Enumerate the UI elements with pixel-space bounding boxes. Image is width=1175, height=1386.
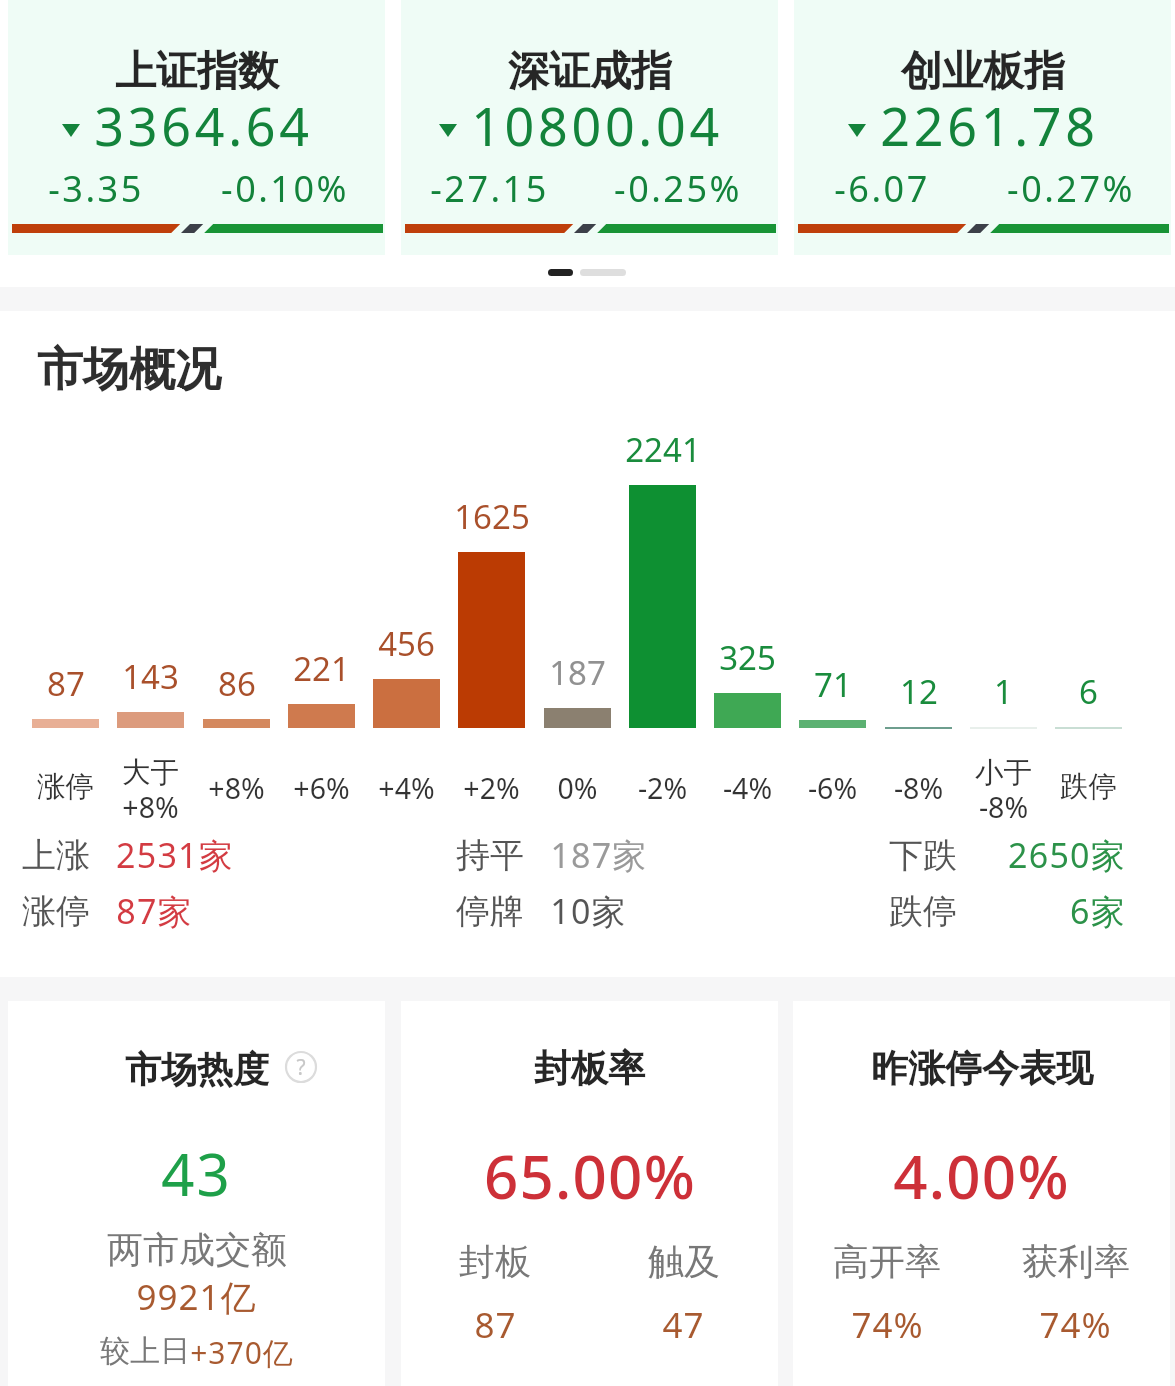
staticText: 小于 -8% [950, 755, 1057, 826]
staticText: +6% [268, 769, 375, 808]
staticText: ? [296, 1053, 306, 1082]
staticText: +370亿 [190, 1332, 294, 1373]
staticText: 停牌 [456, 890, 524, 933]
staticText: -0.27% [1007, 164, 1135, 213]
staticText: 9921亿 [136, 1273, 257, 1321]
staticText: 跌停 [889, 890, 957, 933]
staticText: 86 [218, 661, 256, 706]
button[interactable]: Help: about market heat [285, 1051, 317, 1083]
staticText: 涨停 [22, 890, 90, 933]
staticText: -3.35 [48, 164, 144, 213]
staticText: 65.00% [484, 1135, 696, 1217]
staticText: 87 [474, 1301, 517, 1349]
staticText: 1625 [454, 494, 530, 539]
staticText: 71 [814, 662, 852, 707]
staticText: -27.15 [430, 164, 549, 213]
staticText: 2261.78 [880, 90, 1099, 161]
staticText: 4.00% [893, 1135, 1070, 1217]
staticText: 0% [524, 769, 631, 808]
staticText: 43 [161, 1134, 232, 1213]
staticText: 47 [662, 1301, 705, 1349]
staticText: 获利率 [1022, 1239, 1130, 1284]
button[interactable]: 封板率 [401, 1001, 778, 1386]
staticText: 上涨 [22, 834, 90, 877]
staticText: 143 [122, 654, 179, 699]
staticText: +8% [183, 769, 290, 808]
button[interactable]: 创业板指 [794, 0, 1171, 255]
button[interactable]: Page indicator [548, 262, 626, 283]
staticText: 持平 [456, 834, 524, 877]
staticText: 2531家 [116, 832, 234, 878]
staticText: 2650家 [1008, 832, 1126, 878]
staticText: 456 [378, 621, 435, 666]
button[interactable]: 昨涨停今表现 [793, 1001, 1170, 1386]
staticText: 下跌 [889, 834, 957, 877]
staticText: 1 [994, 669, 1013, 714]
staticText: 封板 [459, 1239, 531, 1284]
staticText: 昨涨停今表现 [871, 1045, 1093, 1092]
staticText: -4% [694, 769, 801, 808]
staticText: +4% [353, 769, 460, 808]
staticText: -2% [609, 769, 716, 808]
staticText: 深证成指 [508, 46, 672, 98]
button[interactable]: 上证指数 [8, 0, 385, 255]
staticText: 触及 [648, 1239, 720, 1284]
button[interactable]: 市场热度 [8, 1001, 385, 1386]
staticText: 市场热度 [125, 1047, 269, 1092]
staticText: 6家 [1070, 888, 1126, 934]
staticText: 高开率 [833, 1239, 941, 1284]
button[interactable]: 深证成指 [401, 0, 778, 255]
staticText: 较上日 [100, 1332, 190, 1370]
staticText: 74% [1039, 1301, 1112, 1349]
staticText: 大于 +8% [97, 755, 204, 826]
staticText: -0.25% [614, 164, 742, 213]
staticText: +2% [438, 769, 545, 808]
staticText: 87家 [116, 888, 193, 934]
staticText: 187家 [550, 832, 648, 878]
staticText: 涨停 [12, 769, 119, 805]
staticText: 上证指数 [115, 46, 279, 98]
staticText: -6% [779, 769, 886, 808]
staticText: 两市成交额 [107, 1227, 287, 1272]
staticText: 跌停 [1035, 769, 1142, 805]
staticText: 市场概况 [37, 341, 221, 399]
staticText: 74% [851, 1301, 924, 1349]
staticText: 10家 [550, 888, 627, 934]
staticText: -0.10% [221, 164, 349, 213]
staticText: 封板率 [534, 1045, 645, 1092]
staticText: 6 [1079, 669, 1098, 714]
staticText: 187 [549, 650, 606, 695]
staticText: 325 [719, 635, 776, 680]
staticText: 221 [293, 646, 350, 691]
staticText: 3364.64 [94, 90, 313, 161]
staticText: 87 [47, 661, 85, 706]
staticText: -8% [865, 769, 972, 808]
staticText: 创业板指 [901, 46, 1065, 98]
staticText: -6.07 [834, 164, 930, 213]
staticText: 10800.04 [471, 90, 723, 161]
staticText: 2241 [625, 427, 701, 472]
staticText: 12 [900, 669, 938, 714]
